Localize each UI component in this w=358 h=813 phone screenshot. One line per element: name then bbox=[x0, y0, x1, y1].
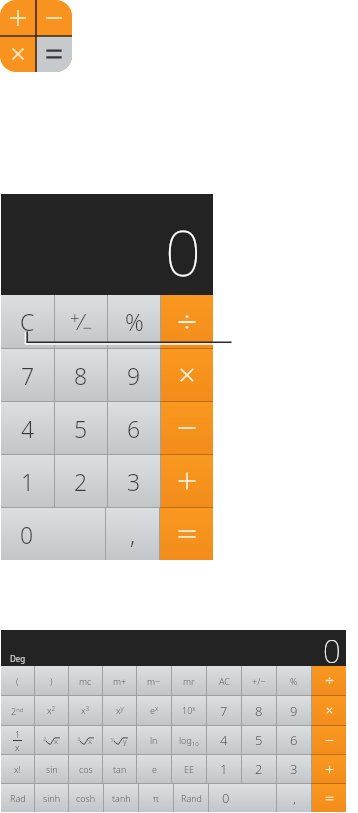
button[interactable]: 1 bbox=[207, 755, 241, 783]
button[interactable]: Rand bbox=[174, 784, 208, 812]
staticText: +⁄− bbox=[70, 306, 93, 338]
button[interactable]: mc bbox=[69, 666, 102, 695]
button[interactable]: x2 bbox=[35, 696, 68, 725]
button[interactable]: ( bbox=[1, 666, 34, 695]
button[interactable]: sin bbox=[35, 755, 68, 783]
button[interactable]: 4 bbox=[1, 402, 54, 454]
button[interactable]: Rad bbox=[1, 784, 34, 812]
button[interactable]: Divide bbox=[161, 295, 213, 348]
staticText: , bbox=[293, 789, 296, 807]
staticText: y bbox=[111, 735, 114, 742]
button[interactable]: 2nd bbox=[1, 696, 34, 725]
staticText: 6 bbox=[290, 731, 298, 749]
button[interactable]: ex bbox=[137, 696, 171, 725]
button[interactable]: m+ bbox=[103, 666, 136, 695]
staticText: x bbox=[88, 735, 93, 746]
staticText: cosh bbox=[76, 792, 96, 804]
button[interactable]: C bbox=[1, 295, 54, 348]
button[interactable]: 1 bbox=[1, 726, 34, 754]
button[interactable]: ln bbox=[137, 726, 171, 754]
staticText: mc bbox=[79, 675, 92, 687]
button[interactable]: 9 bbox=[108, 349, 160, 401]
button[interactable]: 3 bbox=[108, 455, 160, 507]
button[interactable]: AC bbox=[207, 666, 241, 695]
button[interactable]: 8 bbox=[242, 696, 276, 725]
button[interactable]: x! bbox=[1, 755, 34, 783]
button[interactable]: sinh bbox=[35, 784, 68, 812]
button[interactable]: 7 bbox=[1, 349, 54, 401]
button[interactable]: EE bbox=[172, 755, 206, 783]
button[interactable]: tan bbox=[103, 755, 136, 783]
button[interactable]: % bbox=[108, 295, 160, 348]
staticText: 1 bbox=[21, 466, 35, 497]
staticText: 3 bbox=[127, 466, 141, 497]
button[interactable]: e bbox=[137, 755, 171, 783]
button[interactable]: Equals bbox=[312, 784, 346, 812]
button[interactable]: 3 bbox=[277, 755, 311, 783]
button[interactable]: 5 bbox=[242, 726, 276, 754]
staticText: 7 bbox=[220, 702, 228, 720]
button[interactable]: 2 bbox=[55, 455, 107, 507]
button[interactable]: Minus bbox=[161, 402, 213, 454]
button[interactable]: tanh bbox=[104, 784, 138, 812]
staticText: AC bbox=[219, 675, 230, 687]
button[interactable]: , bbox=[106, 508, 159, 560]
button[interactable]: x3 bbox=[69, 696, 102, 725]
button[interactable]: Plus bbox=[161, 455, 213, 507]
button[interactable]: Minus bbox=[312, 726, 346, 754]
staticText: tanh bbox=[112, 792, 131, 804]
button[interactable]: cos bbox=[69, 755, 102, 783]
button[interactable]: 1 bbox=[1, 455, 54, 507]
button[interactable]: , bbox=[277, 784, 311, 812]
button[interactable]: Calculator app icon bbox=[0, 0, 72, 72]
staticText: Rand bbox=[181, 792, 202, 804]
button[interactable]: m− bbox=[137, 666, 171, 695]
staticText: y bbox=[123, 735, 127, 746]
button[interactable]: 10x bbox=[172, 696, 206, 725]
button[interactable]: 8 bbox=[55, 349, 107, 401]
staticText: Deg bbox=[10, 653, 26, 664]
button[interactable]: 2 bbox=[35, 726, 68, 754]
staticText: sin bbox=[46, 763, 58, 775]
button[interactable]: 0 bbox=[209, 784, 276, 812]
button[interactable]: 4 bbox=[207, 726, 241, 754]
button[interactable]: Plus minus bbox=[55, 295, 107, 348]
button[interactable]: 0 bbox=[1, 508, 105, 560]
button[interactable]: 9 bbox=[277, 696, 311, 725]
button[interactable]: Equals bbox=[160, 508, 213, 560]
staticText: 5 bbox=[74, 413, 88, 444]
button[interactable]: y bbox=[103, 726, 136, 754]
button[interactable]: 2 bbox=[242, 755, 276, 783]
button[interactable]: Multiply bbox=[312, 696, 346, 725]
button[interactable]: xy bbox=[103, 696, 136, 725]
button[interactable]: π bbox=[139, 784, 173, 812]
staticText: 0 bbox=[20, 519, 34, 550]
staticText: mr bbox=[183, 675, 195, 687]
staticText: cos bbox=[79, 763, 93, 775]
staticText: x bbox=[54, 735, 59, 746]
staticText: EE bbox=[184, 763, 194, 775]
staticText: 2 bbox=[74, 466, 88, 497]
button[interactable]: cosh bbox=[69, 784, 103, 812]
button[interactable]: % bbox=[277, 666, 311, 695]
staticText: ( bbox=[16, 675, 19, 687]
button[interactable]: Multiply bbox=[161, 349, 213, 401]
button[interactable]: Plus bbox=[312, 755, 346, 783]
button[interactable]: 5 bbox=[55, 402, 107, 454]
button[interactable]: Divide bbox=[312, 666, 346, 695]
staticText: C bbox=[20, 306, 35, 337]
button[interactable]: log10 bbox=[172, 726, 206, 754]
staticText: x bbox=[15, 741, 20, 753]
button[interactable]: ) bbox=[35, 666, 68, 695]
staticText: 3 bbox=[290, 760, 298, 778]
staticText: 4 bbox=[220, 731, 228, 749]
staticText: xy bbox=[116, 704, 124, 717]
button[interactable]: mr bbox=[172, 666, 206, 695]
button[interactable]: 6 bbox=[277, 726, 311, 754]
button[interactable]: 3 bbox=[69, 726, 102, 754]
button[interactable]: +/− bbox=[242, 666, 276, 695]
button[interactable]: 7 bbox=[207, 696, 241, 725]
button[interactable]: 6 bbox=[108, 402, 160, 454]
staticText: 8 bbox=[74, 360, 88, 391]
staticText: π bbox=[153, 792, 159, 804]
